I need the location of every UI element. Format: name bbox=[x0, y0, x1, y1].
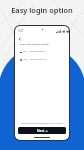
button[interactable]: +91 bbox=[20, 50, 69, 53]
staticText: 9:41 bbox=[18, 29, 24, 33]
staticText: OTP bbox=[23, 58, 28, 61]
staticText: By continuing you agree to our terms bbox=[17, 121, 67, 124]
button[interactable]: Back bbox=[18, 37, 22, 41]
staticText: Easy login option bbox=[11, 5, 73, 15]
staticText: Mobile number bbox=[29, 50, 45, 53]
button[interactable]: OTP bbox=[20, 58, 69, 61]
staticText: Choose method bbox=[30, 58, 47, 61]
button[interactable]: Next → bbox=[18, 127, 66, 134]
staticText: Next → bbox=[37, 129, 48, 133]
staticText: +91 bbox=[23, 50, 27, 53]
staticText: Enter your mobile number bbox=[20, 43, 50, 46]
